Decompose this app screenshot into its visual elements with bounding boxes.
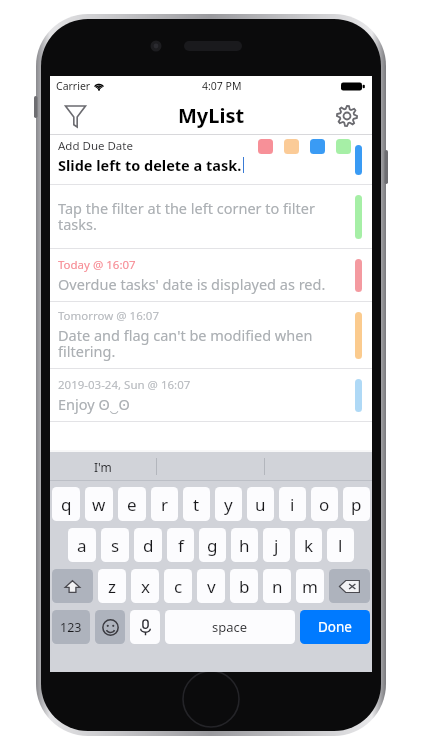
staticText: Date and flag can't be modified when fil…: [58, 325, 342, 362]
staticText: g: [207, 534, 218, 557]
button[interactable]: Filter: [58, 99, 92, 133]
button[interactable]: i: [279, 487, 306, 521]
staticText: i: [290, 493, 295, 516]
staticText: Enjoy ʘ‿ʘ: [58, 394, 130, 414]
button[interactable]: 123: [52, 610, 90, 644]
staticText: j: [274, 534, 279, 557]
staticText: v: [207, 575, 216, 598]
staticText: I'm: [94, 459, 112, 475]
button[interactable]: k: [295, 528, 322, 562]
staticText: x: [141, 575, 150, 598]
staticText: Today @ 16:07: [58, 257, 136, 273]
button[interactable]: x: [131, 569, 159, 603]
staticText: s: [111, 534, 120, 557]
staticText: Add Due Date: [58, 138, 133, 154]
button[interactable]: [258, 139, 273, 154]
staticText: k: [304, 534, 314, 557]
button[interactable]: w: [85, 487, 113, 521]
staticText: h: [239, 534, 250, 557]
button[interactable]: Tap the filter at the left corner to fil…: [50, 185, 372, 248]
staticText: Overdue tasks' date is displayed as red.: [58, 274, 326, 294]
button[interactable]: g: [199, 528, 226, 562]
staticText: t: [193, 493, 200, 516]
staticText: q: [61, 493, 72, 516]
staticText: Slide left to delete a task.: [58, 155, 242, 175]
button[interactable]: s: [101, 528, 129, 562]
button[interactable]: u: [247, 487, 274, 521]
staticText: c: [174, 575, 183, 598]
button[interactable]: h: [231, 528, 258, 562]
staticText: m: [302, 575, 318, 598]
staticText: e: [127, 493, 137, 516]
button[interactable]: [157, 452, 264, 481]
staticText: Tap the filter at the left corner to fil…: [58, 198, 342, 235]
staticText: y: [224, 493, 233, 516]
staticText: r: [161, 493, 169, 516]
staticText: l: [338, 534, 343, 557]
button[interactable]: f: [167, 528, 194, 562]
button[interactable]: t: [183, 487, 210, 521]
button[interactable]: e: [118, 487, 146, 521]
button[interactable]: m: [296, 569, 324, 603]
staticText: Carrier: [56, 79, 91, 93]
staticText: u: [255, 493, 266, 516]
staticText: MyList: [178, 102, 245, 129]
button[interactable]: [284, 139, 299, 154]
staticText: Tomorrow @ 16:07: [58, 308, 160, 324]
button[interactable]: Add Due Date: [50, 135, 372, 184]
button[interactable]: d: [134, 528, 162, 562]
button[interactable]: y: [215, 487, 242, 521]
button[interactable]: Shift: [52, 569, 93, 603]
button[interactable]: l: [327, 528, 354, 562]
button[interactable]: I'm: [50, 452, 156, 481]
button[interactable]: j: [263, 528, 290, 562]
staticText: 2019-03-24, Sun @ 16:07: [58, 377, 191, 393]
staticText: f: [178, 534, 184, 557]
button[interactable]: Done: [300, 610, 370, 644]
button[interactable]: [310, 139, 325, 154]
button[interactable]: 2019-03-24, Sun @ 16:07: [50, 369, 372, 421]
staticText: Done: [318, 618, 352, 636]
staticText: 123: [60, 619, 82, 636]
staticText: 4:07 PM: [202, 79, 242, 93]
button[interactable]: Backspace: [329, 569, 370, 603]
button[interactable]: o: [311, 487, 338, 521]
button[interactable]: q: [52, 487, 80, 521]
button[interactable]: p: [343, 487, 370, 521]
button[interactable]: Tomorrow @ 16:07: [50, 302, 372, 368]
button[interactable]: b: [230, 569, 258, 603]
staticText: d: [143, 534, 154, 557]
staticText: b: [239, 575, 250, 598]
staticText: o: [319, 493, 330, 516]
button[interactable]: a: [68, 528, 96, 562]
button[interactable]: Settings: [330, 99, 364, 133]
button[interactable]: z: [98, 569, 126, 603]
button[interactable]: n: [263, 569, 291, 603]
button[interactable]: c: [164, 569, 192, 603]
staticText: space: [212, 618, 248, 636]
button[interactable]: r: [151, 487, 178, 521]
staticText: z: [108, 575, 116, 598]
staticText: n: [272, 575, 283, 598]
staticText: a: [77, 534, 87, 557]
button[interactable]: space: [165, 610, 295, 644]
button[interactable]: [336, 139, 351, 154]
staticText: p: [351, 493, 362, 516]
button[interactable]: v: [197, 569, 225, 603]
button[interactable]: [265, 452, 372, 481]
staticText: w: [92, 493, 106, 516]
button[interactable]: Dictation: [130, 610, 160, 644]
button[interactable]: Today @ 16:07: [50, 249, 372, 301]
button[interactable]: Emoji: [95, 610, 125, 644]
